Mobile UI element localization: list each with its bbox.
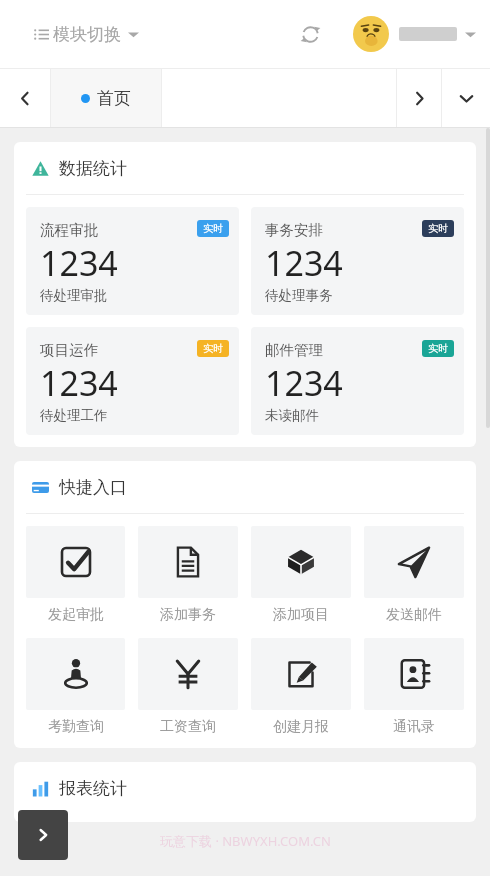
staticText: 待处理事务 xyxy=(265,287,333,304)
staticText: 添加项目 xyxy=(273,606,329,624)
button[interactable]: 首页 xyxy=(51,69,161,127)
button[interactable]: 通讯录 xyxy=(364,638,464,736)
staticText: 1234 xyxy=(40,360,118,406)
staticText: 实时 xyxy=(203,222,223,235)
staticText: 创建月报 xyxy=(273,718,329,736)
staticText: 模块切换 xyxy=(53,24,121,45)
button[interactable]: Expand xyxy=(18,810,68,860)
button[interactable]: 项目运作 xyxy=(26,327,239,435)
staticText: 邮件管理 xyxy=(265,341,323,359)
staticText: 首页 xyxy=(97,88,131,109)
staticText: 1234 xyxy=(40,240,118,286)
staticText: 快捷入口 xyxy=(59,477,127,498)
staticText: 报表统计 xyxy=(59,778,127,799)
button[interactable]: 工资查询 xyxy=(138,638,238,736)
button[interactable]: Refresh xyxy=(293,17,327,51)
staticText: 考勤查询 xyxy=(48,718,104,736)
staticText: 实时 xyxy=(428,342,448,355)
button[interactable]: 创建月报 xyxy=(251,638,351,736)
staticText: 流程审批 xyxy=(40,221,98,239)
staticText: 添加事务 xyxy=(160,606,216,624)
button[interactable]: 模块切换 xyxy=(34,24,139,45)
staticText: 工资查询 xyxy=(160,718,216,736)
button[interactable]: 添加事务 xyxy=(138,526,238,624)
staticText: 待处理工作 xyxy=(40,407,108,424)
button[interactable]: 发起审批 xyxy=(26,526,125,624)
button[interactable]: 发送邮件 xyxy=(364,526,464,624)
staticText: 通讯录 xyxy=(393,718,435,736)
button[interactable]: 流程审批 xyxy=(26,207,239,315)
staticText: 事务安排 xyxy=(265,221,323,239)
staticText: 待处理审批 xyxy=(40,287,108,304)
staticText: 1234 xyxy=(265,360,343,406)
staticText: 未读邮件 xyxy=(265,407,319,424)
staticText: 1234 xyxy=(265,240,343,286)
button[interactable]: Next tab xyxy=(397,69,441,127)
button[interactable]: 添加项目 xyxy=(251,526,351,624)
button[interactable] xyxy=(353,16,389,52)
staticText: 玩意下载 · NBWYXH.COM.CN xyxy=(160,832,331,850)
staticText: 数据统计 xyxy=(59,158,127,179)
staticText: 项目运作 xyxy=(40,341,98,359)
staticText: 发送邮件 xyxy=(386,606,442,624)
staticText: 实时 xyxy=(203,342,223,355)
button[interactable]: 事务安排 xyxy=(251,207,464,315)
button[interactable]: Back xyxy=(0,69,50,127)
button[interactable]: 邮件管理 xyxy=(251,327,464,435)
button[interactable]: 考勤查询 xyxy=(26,638,125,736)
button[interactable]: Show all tabs xyxy=(442,69,490,127)
staticText: 发起审批 xyxy=(48,606,104,624)
staticText: 实时 xyxy=(428,222,448,235)
